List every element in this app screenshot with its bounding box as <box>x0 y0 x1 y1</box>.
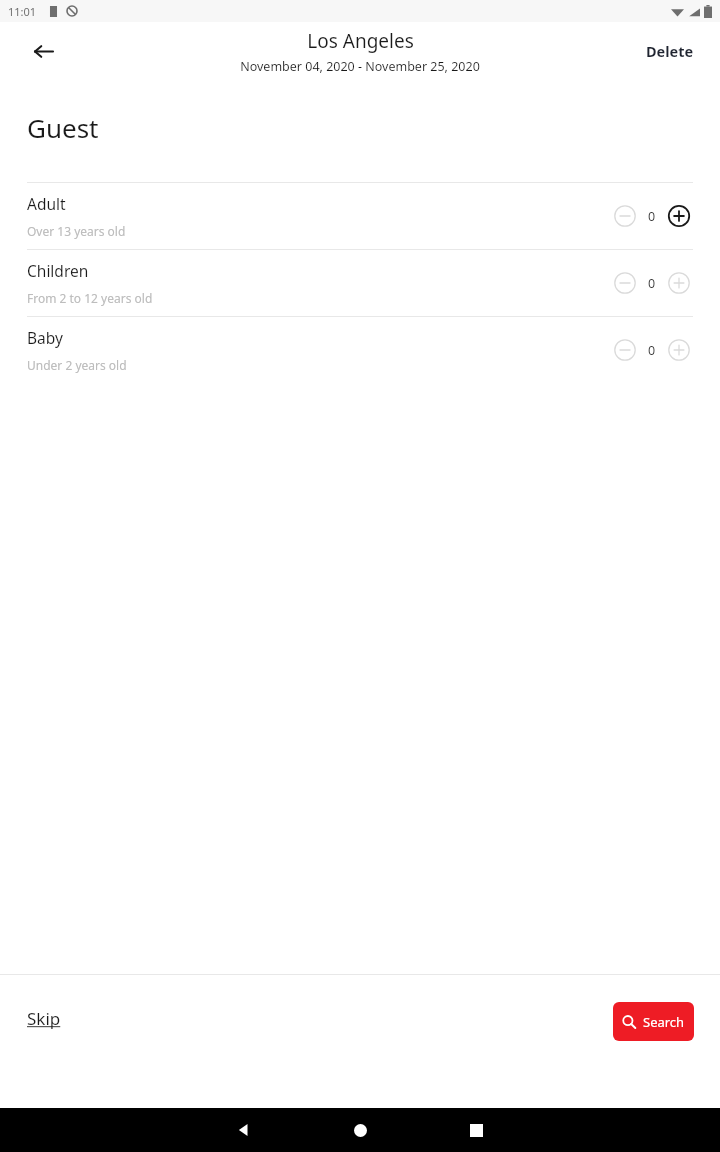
staticText: Skip <box>27 1007 61 1030</box>
staticText: Los Angeles <box>307 28 414 54</box>
button[interactable]: Increase Baby <box>664 335 694 365</box>
button[interactable]: Delete <box>646 41 694 61</box>
staticText: 0 <box>648 275 656 292</box>
staticText: Guest <box>27 110 99 145</box>
button[interactable]: Home <box>336 1108 384 1152</box>
staticText: Under 2 years old <box>27 357 127 373</box>
staticText: From 2 to 12 years old <box>27 290 153 306</box>
staticText: Delete <box>646 41 694 61</box>
button[interactable]: Back <box>220 1108 268 1152</box>
button[interactable]: Back <box>25 33 61 69</box>
button[interactable]: Recents <box>452 1108 500 1152</box>
staticText: 11:01 <box>8 4 37 19</box>
staticText: Over 13 years old <box>27 223 126 239</box>
staticText: Adult <box>27 193 66 214</box>
button[interactable]: Decrease Baby <box>610 335 640 365</box>
button[interactable]: Search <box>613 1002 694 1041</box>
staticText: Baby <box>27 327 63 348</box>
button[interactable]: Increase Adult <box>664 201 694 231</box>
staticText: 0 <box>648 208 656 225</box>
staticText: Search <box>643 1013 685 1031</box>
button[interactable]: Increase Children <box>664 268 694 298</box>
button[interactable]: Skip <box>27 1007 61 1030</box>
button[interactable]: Decrease Adult <box>610 201 640 231</box>
staticText: 0 <box>648 342 656 359</box>
button[interactable]: Decrease Children <box>610 268 640 298</box>
staticText: November 04, 2020 - November 25, 2020 <box>240 58 480 75</box>
staticText: Children <box>27 260 89 281</box>
